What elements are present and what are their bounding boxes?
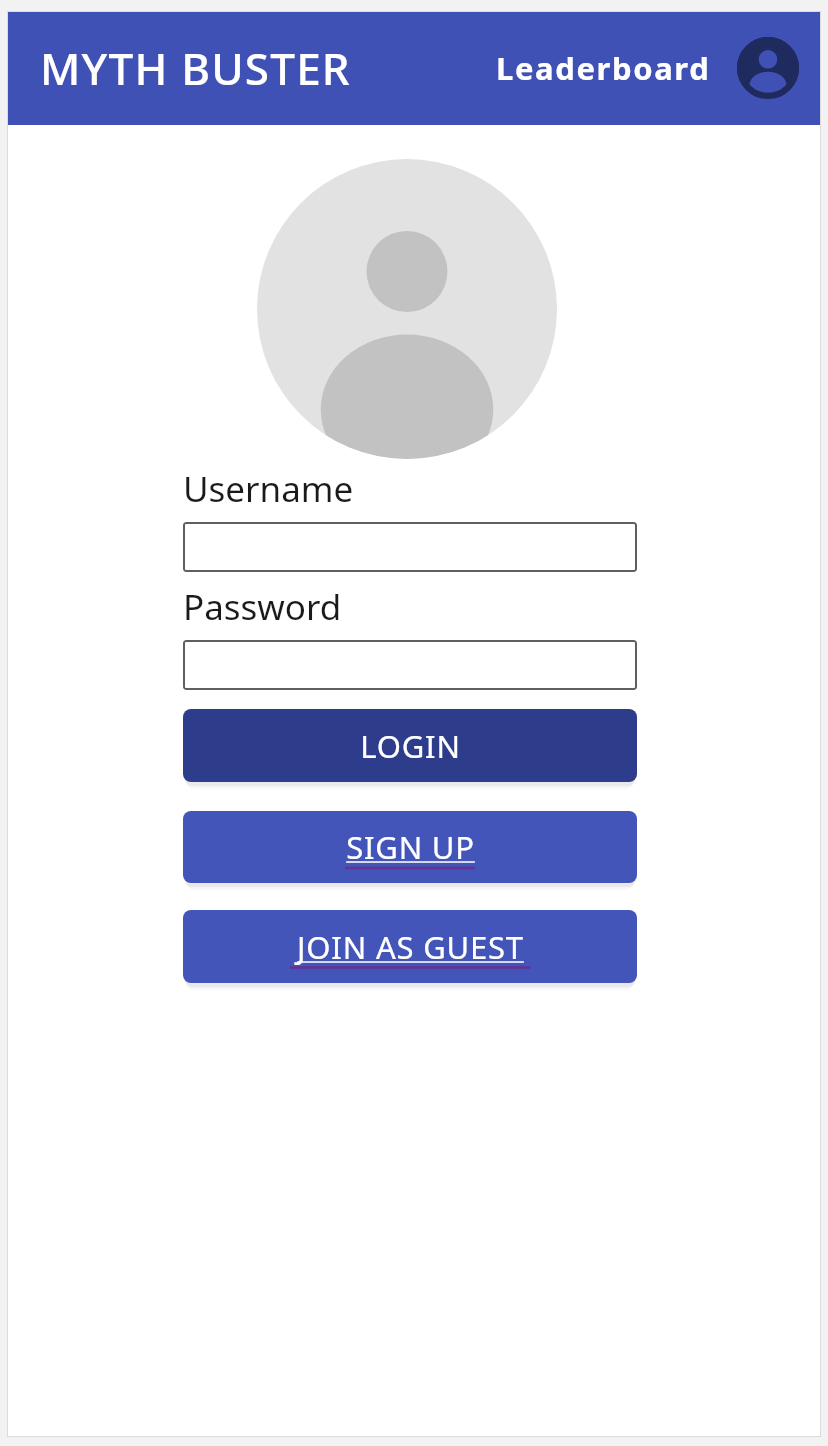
staticText: Leaderboard xyxy=(496,47,711,89)
button[interactable]: LOGIN xyxy=(183,709,637,782)
staticText: LOGIN xyxy=(360,725,461,767)
staticText: JOIN AS GUEST xyxy=(297,926,524,968)
staticText: Username xyxy=(183,465,354,513)
staticText: Password xyxy=(183,583,342,631)
button[interactable]: Leaderboard xyxy=(490,41,717,95)
button[interactable]: Text input xyxy=(183,522,637,572)
staticText: SIGN UP xyxy=(346,826,475,868)
button[interactable]: Profile picture xyxy=(257,159,557,459)
button[interactable]: Text input xyxy=(183,640,637,690)
button[interactable]: JOIN AS GUEST xyxy=(183,910,637,983)
button[interactable]: SIGN UP xyxy=(183,811,637,883)
staticText: MYTH BUSTER xyxy=(40,38,351,98)
button[interactable]: Account xyxy=(735,35,801,101)
